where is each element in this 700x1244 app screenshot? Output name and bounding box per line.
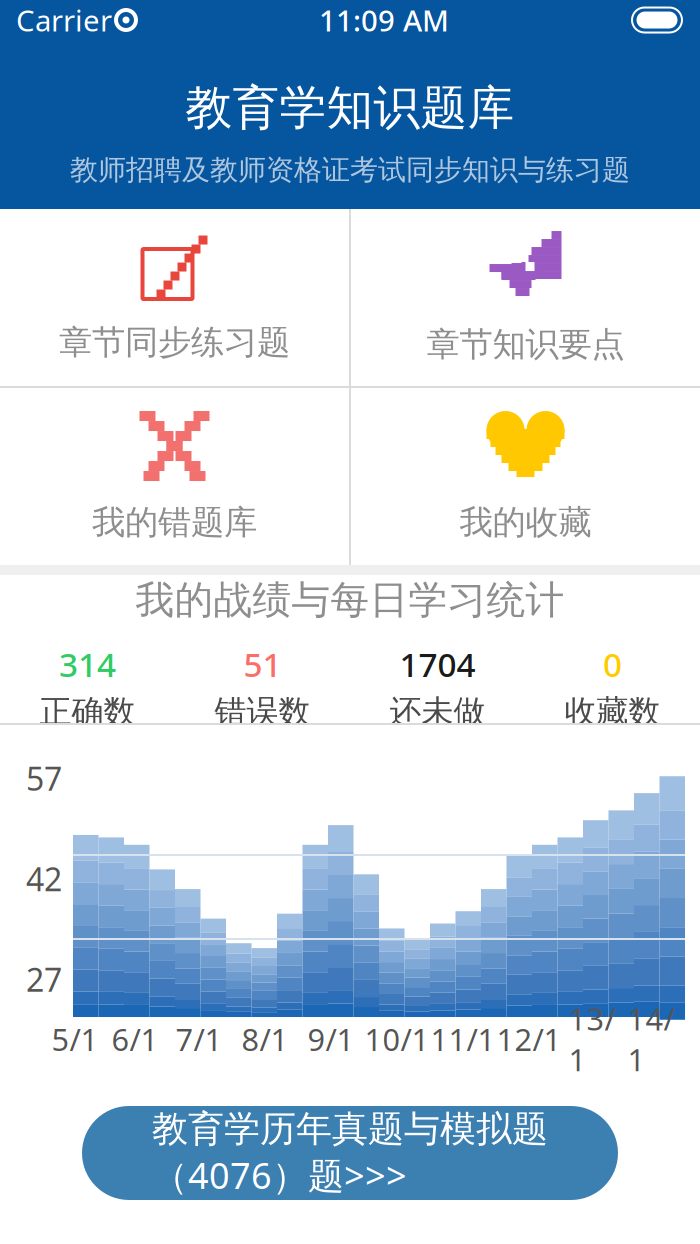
staticText: 27: [26, 958, 62, 1000]
staticText: 我的错题库: [92, 502, 257, 543]
staticText: 5/1: [51, 1019, 98, 1059]
staticText: 51: [243, 642, 281, 686]
staticText: 11:09 AM: [319, 0, 449, 39]
staticText: 教师招聘及教师资格证考试同步知识与练习题: [70, 153, 630, 187]
button[interactable]: 我的错题库: [0, 388, 349, 565]
staticText: 12/1: [496, 1019, 561, 1059]
staticText: 314: [59, 642, 116, 686]
button[interactable]: 章节知识要点: [351, 209, 700, 386]
staticText: 我的收藏: [459, 502, 591, 543]
staticText: 9/1: [307, 1019, 354, 1059]
staticText: 教育学知识题库: [185, 79, 514, 137]
staticText: 教育学历年真题与模拟题（4076）题>>>: [152, 1107, 548, 1199]
staticText: 章节同步练习题: [59, 322, 290, 363]
staticText: 章节知识要点: [426, 324, 624, 365]
staticText: 14/1: [627, 998, 674, 1080]
staticText: 7/1: [175, 1019, 222, 1059]
staticText: Carrier: [16, 0, 112, 39]
staticText: 13/1: [568, 998, 615, 1080]
staticText: 11/1: [430, 1019, 495, 1059]
button[interactable]: 我的收藏: [351, 388, 700, 565]
staticText: 还未做: [389, 692, 485, 731]
staticText: 0: [603, 642, 622, 686]
staticText: 正确数: [39, 692, 135, 731]
staticText: 6/1: [111, 1019, 158, 1059]
staticText: 42: [26, 857, 62, 900]
staticText: 错误数: [214, 692, 310, 731]
staticText: 收藏数: [564, 692, 660, 731]
button[interactable]: 教育学历年真题与模拟题（4076）题>>>: [82, 1106, 618, 1200]
staticText: 我的战绩与每日学习统计: [135, 576, 564, 624]
staticText: 1704: [399, 642, 475, 686]
button[interactable]: 章节同步练习题: [0, 209, 349, 386]
staticText: 8/1: [241, 1019, 288, 1059]
staticText: 57: [26, 757, 62, 799]
staticText: 10/1: [364, 1019, 429, 1059]
